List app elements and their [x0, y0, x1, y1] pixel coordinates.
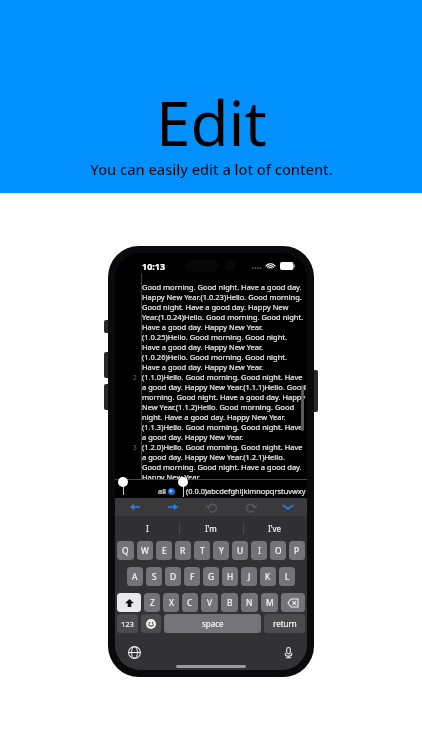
staticText: a good day. Happy New Year.(1.1.1)Hello.… [142, 382, 306, 392]
staticText: all [158, 486, 166, 496]
staticText: J [248, 571, 251, 582]
staticText: O [275, 545, 282, 556]
button[interactable]: C [182, 593, 198, 612]
button[interactable]: Undo [201, 498, 223, 516]
button[interactable]: J [241, 567, 257, 586]
button[interactable]: Z [144, 593, 160, 612]
button[interactable]: E [156, 541, 172, 560]
button[interactable]: Q [117, 541, 134, 560]
staticText: V [207, 597, 213, 608]
button[interactable]: space [164, 614, 261, 633]
staticText: I've [268, 523, 282, 534]
staticText: E [162, 545, 167, 556]
button[interactable]: I [251, 541, 267, 560]
staticText: return [273, 618, 297, 629]
button[interactable]: Previous [124, 498, 146, 516]
staticText: C [187, 597, 193, 608]
button[interactable]: Dictation [279, 643, 297, 661]
staticText: T [200, 545, 205, 556]
staticText: L [285, 571, 290, 582]
button[interactable]: B [221, 593, 238, 612]
button[interactable]: K [260, 567, 276, 586]
staticText: A [132, 571, 138, 582]
staticText: (1.1.0)Hello. Good morning. Good night. … [142, 372, 303, 382]
button[interactable]: return [264, 614, 305, 633]
button[interactable]: Good morning. Good night. Have a good da… [115, 273, 307, 480]
staticText: M [266, 597, 274, 608]
staticText: F [190, 571, 195, 582]
button[interactable]: Redo [239, 498, 261, 516]
button[interactable]: D [165, 567, 181, 586]
staticText: S [152, 571, 157, 582]
staticText: (1.0.26)Hello. Good morning. Good night. [142, 352, 287, 362]
button[interactable]: Hide keyboard [277, 498, 299, 516]
button[interactable]: I [115, 516, 179, 540]
button[interactable]: R [175, 541, 191, 560]
button[interactable]: S [146, 567, 162, 586]
button[interactable]: O [270, 541, 286, 560]
staticText: space [202, 618, 224, 629]
staticText: Y [219, 545, 224, 556]
button[interactable]: N [241, 593, 258, 612]
button[interactable]: G [203, 567, 219, 586]
staticText: D [170, 571, 177, 582]
staticText: I [146, 523, 149, 534]
staticText: Good night. Have a good day. Happy New [142, 302, 289, 312]
staticText: (0.0.0)abcdefghijklmnopqrstuvwxy [186, 486, 306, 496]
button[interactable]: V [201, 593, 218, 612]
staticText: I'm [205, 523, 217, 534]
staticText: Have a good day. Happy New Year. [142, 322, 263, 332]
button[interactable]: P [289, 541, 305, 560]
staticText: X [169, 597, 174, 608]
button[interactable]: X [163, 593, 179, 612]
button[interactable]: A [127, 567, 143, 586]
staticText: H [227, 571, 234, 582]
button[interactable]: L [279, 567, 295, 586]
staticText: Good morning. Good night. Have a good da… [142, 462, 302, 472]
button[interactable]: U [232, 541, 248, 560]
staticText: Edit [156, 80, 267, 164]
button[interactable]: Y [213, 541, 229, 560]
staticText: night. Have a good day. Happy New Year. [142, 412, 286, 422]
button[interactable]: F [184, 567, 200, 586]
staticText: (1.1.3)Hello. Good morning. Good night. … [142, 422, 303, 432]
staticText: (1.2.0)Hello. Good morning. Good night. … [142, 442, 303, 452]
button[interactable]: H [222, 567, 238, 586]
staticText: Q [122, 545, 129, 556]
staticText: 2 [133, 373, 137, 382]
staticText: (1.0.25)Hello. Good morning. Good night. [142, 332, 287, 342]
staticText: Year.(1.0.24)Hello. Good morning. Good n… [142, 312, 304, 322]
button[interactable]: I've [243, 516, 307, 540]
staticText: Have a good day. Happy New Year. [142, 362, 263, 372]
button[interactable]: Shift [117, 593, 141, 612]
button[interactable]: W [137, 541, 153, 560]
staticText: morning. Good night. Have a good day. Ha… [142, 392, 306, 402]
staticText: Happy New Year.(1.0.23)Hello. Good morni… [142, 292, 302, 302]
staticText: G [208, 571, 215, 582]
staticText: 3 [133, 443, 137, 452]
button[interactable]: Backspace [281, 593, 305, 612]
staticText: R [180, 545, 186, 556]
staticText: I [258, 545, 261, 556]
button[interactable]: Emoji [141, 614, 161, 633]
button[interactable]: T [194, 541, 210, 560]
button[interactable]: Next [162, 498, 184, 516]
button[interactable]: M [261, 593, 278, 612]
staticText: Have a good day. Happy New Year. [142, 342, 263, 352]
staticText: a good day. Happy New Year. [142, 432, 244, 442]
staticText: Happy New Year. [142, 472, 201, 480]
staticText: 123 [121, 619, 134, 629]
button[interactable]: 123 [117, 614, 138, 633]
staticText: You can easily edit a lot of content. [90, 159, 333, 179]
staticText: Good morning. Good night. Have a good da… [142, 282, 302, 292]
staticText: W [141, 545, 149, 556]
staticText: K [265, 571, 271, 582]
staticText: New Year.(1.1.2)Hello. Good morning. Goo… [142, 402, 295, 412]
staticText: P [294, 545, 300, 556]
staticText: Z [150, 597, 155, 608]
staticText: N [246, 597, 253, 608]
staticText: U [237, 545, 244, 556]
button[interactable]: Change keyboard [125, 643, 143, 661]
staticText: a good day. Happy New Year.(1.2.1)Hello. [142, 452, 285, 462]
button[interactable]: I'm [179, 516, 243, 540]
